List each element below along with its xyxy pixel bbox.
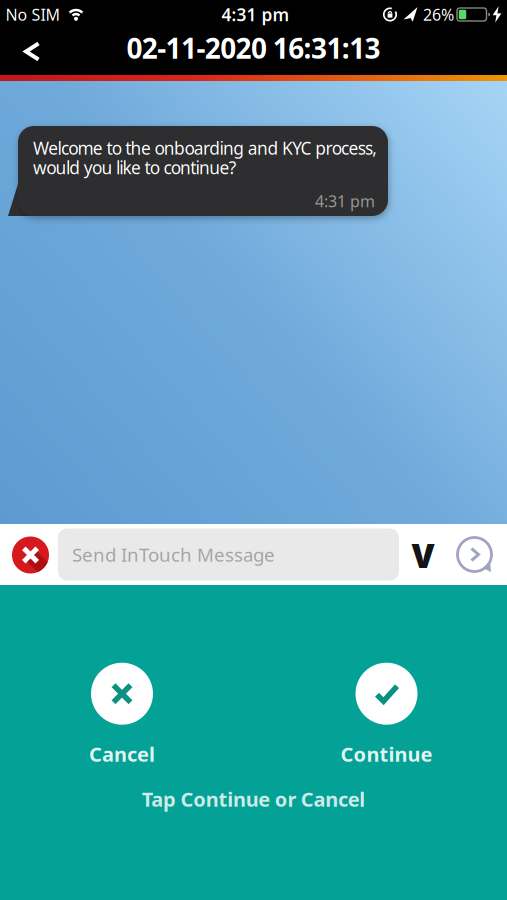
button[interactable]: V [406,535,440,575]
button[interactable] [4,37,48,65]
staticText: Welcome to the onboarding and KYC proces… [33,136,377,159]
staticText: Send InTouch Message [72,542,275,567]
staticText: No SIM [5,4,60,25]
button[interactable]: Continue [340,663,432,767]
staticText: 4:31 pm [315,190,375,212]
staticText: V [411,533,434,577]
staticText: Cancel [89,741,155,767]
staticText: would you like to continue? [33,156,237,179]
button[interactable] [12,536,49,573]
button[interactable]: Send InTouch Message [58,528,399,580]
button[interactable]: Cancel [89,663,155,767]
staticText: 26% [423,4,454,25]
staticText: 02-11-2020 16:31:13 [126,29,381,67]
staticText: 4:31 pm [221,3,289,26]
button[interactable] [456,536,493,573]
staticText: Continue [340,741,432,767]
staticText: Tap Continue or Cancel [142,786,365,812]
